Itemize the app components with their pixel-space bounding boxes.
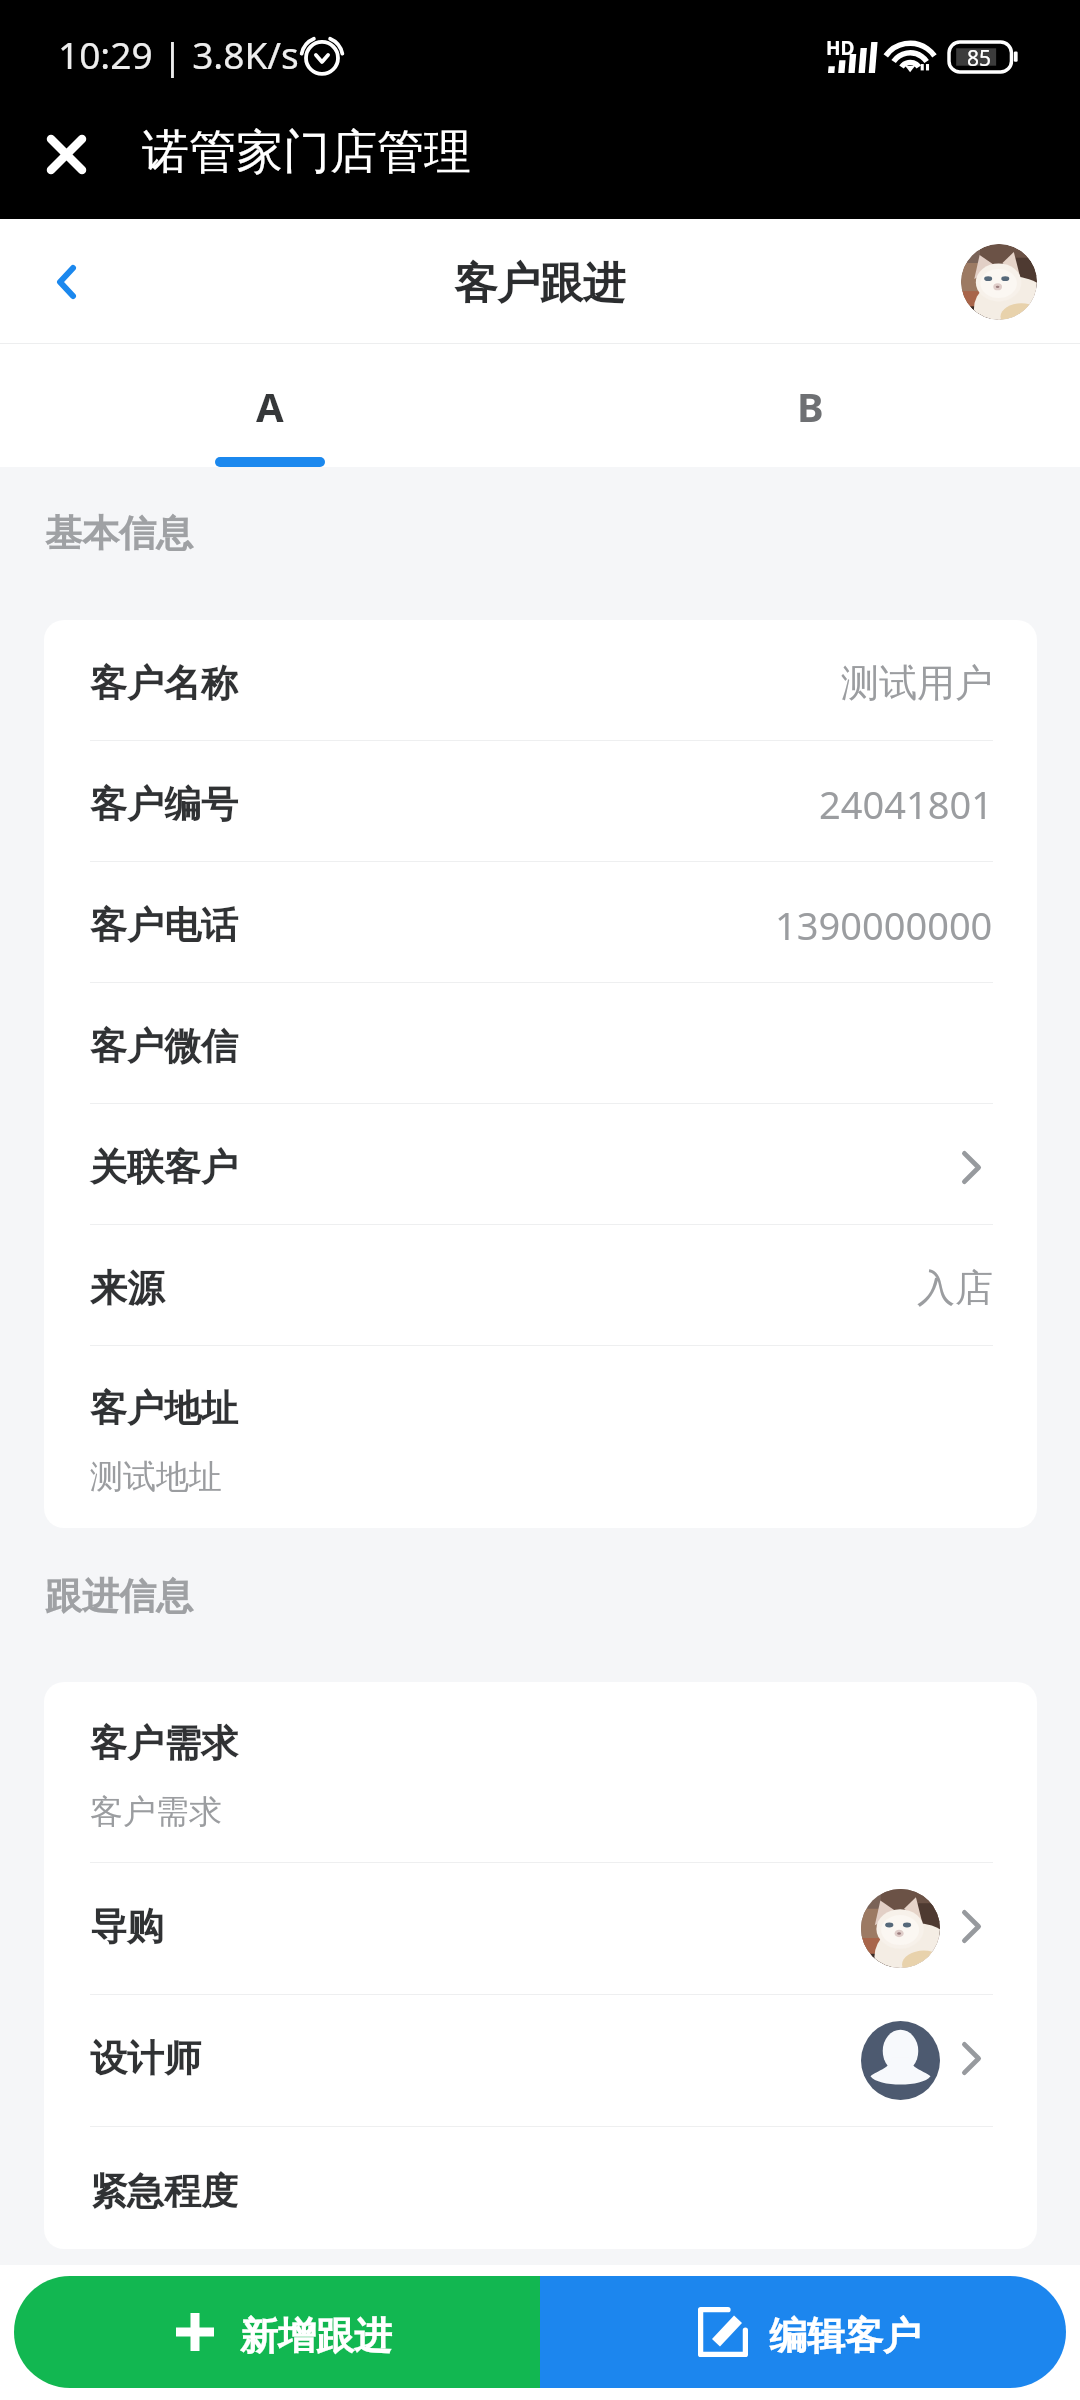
staticText: 入店	[917, 1264, 993, 1312]
staticText: 导购	[90, 1903, 164, 1950]
button[interactable]: A	[0, 344, 540, 467]
staticText: 设计师	[90, 2035, 201, 2082]
staticText: 客户编号	[90, 781, 238, 828]
button[interactable]: 客户需求	[44, 1682, 1037, 1863]
button[interactable]: 客户电话	[44, 862, 1037, 983]
button[interactable]: Close	[25, 113, 107, 195]
staticText: 诺管家门店管理	[142, 123, 471, 182]
button[interactable]: 关联客户	[44, 1104, 1037, 1225]
staticText: 测试用户	[841, 659, 993, 707]
staticText: 客户名称	[90, 660, 238, 707]
button[interactable]: 新增跟进	[14, 2276, 540, 2388]
staticText: B	[797, 379, 824, 433]
staticText: 来源	[90, 1265, 164, 1312]
button[interactable]: 紧急程度	[44, 2127, 1037, 2249]
button[interactable]: 客户编号	[44, 741, 1037, 862]
staticText: 客户需求	[90, 1791, 222, 1833]
button[interactable]: 来源	[44, 1225, 1037, 1346]
staticText: 10:29 | 3.8K/s	[58, 29, 299, 79]
button[interactable]: B	[540, 344, 1080, 467]
staticText: HD	[826, 35, 855, 61]
staticText: 测试地址	[90, 1456, 222, 1498]
staticText: 关联客户	[90, 1144, 238, 1191]
staticText: 85	[967, 44, 992, 73]
staticText: 客户跟进	[454, 257, 626, 311]
button[interactable]: 客户微信	[44, 983, 1037, 1104]
staticText: 1390000000	[775, 899, 993, 951]
staticText: 编辑客户	[769, 2312, 921, 2360]
button[interactable]: 客户名称	[44, 620, 1037, 741]
button[interactable]: 导购	[44, 1863, 1037, 1995]
staticText: 24041801	[819, 778, 993, 830]
staticText: 基本信息	[45, 510, 193, 557]
button[interactable]: 设计师	[44, 1995, 1037, 2127]
staticText: 客户地址	[90, 1385, 238, 1432]
button[interactable]: Profile	[961, 244, 1037, 320]
staticText: 客户需求	[90, 1720, 238, 1767]
staticText: A	[256, 379, 284, 433]
staticText: 跟进信息	[45, 1573, 193, 1620]
button[interactable]: 编辑客户	[540, 2276, 1066, 2388]
button[interactable]: Back	[30, 246, 102, 318]
staticText: 客户微信	[90, 1023, 238, 1070]
staticText: 客户电话	[90, 902, 238, 949]
staticText: 紧急程度	[90, 2168, 238, 2215]
button[interactable]: 客户地址	[44, 1346, 1037, 1528]
staticText: 新增跟进	[240, 2312, 392, 2360]
